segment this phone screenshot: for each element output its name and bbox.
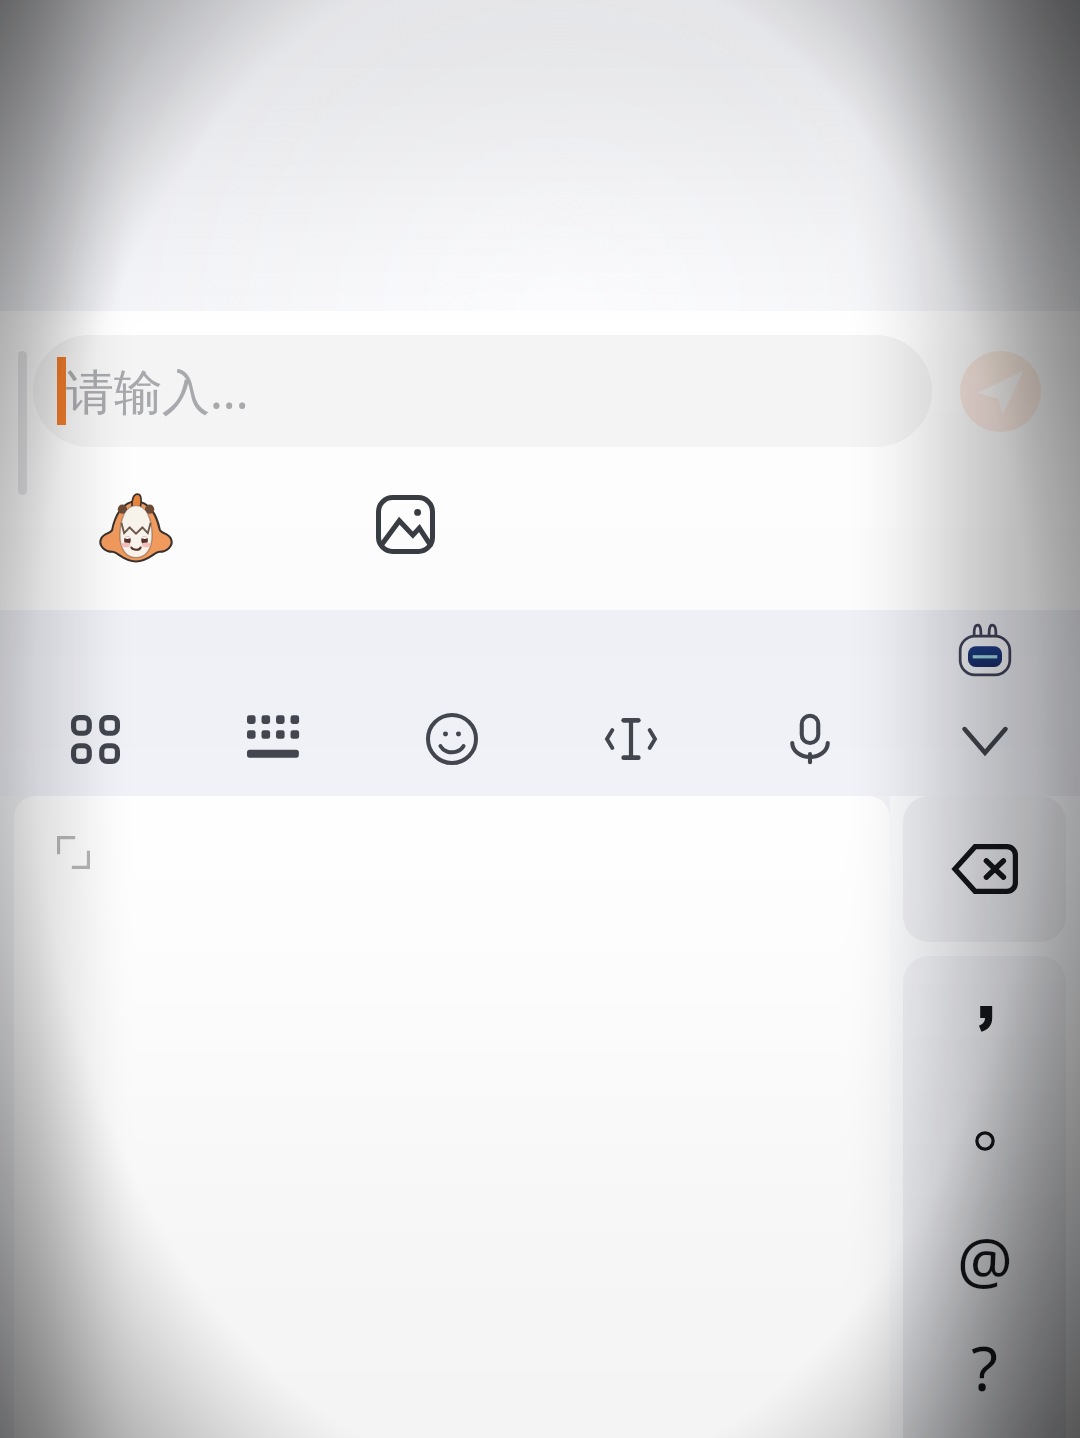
button[interactable]: Emoji — [390, 676, 514, 802]
button[interactable]: Comma — [903, 958, 1066, 1078]
button[interactable]: Handwriting area — [14, 796, 890, 1438]
button[interactable]: Stickers — [96, 490, 176, 570]
button[interactable]: Voice input — [748, 676, 872, 802]
button[interactable]: Edit text — [569, 676, 693, 802]
button[interactable]: Apps — [33, 676, 157, 802]
button[interactable]: Send — [960, 351, 1041, 432]
button[interactable]: Keyboard layout — [211, 676, 335, 802]
button[interactable]: Pictures — [376, 495, 435, 554]
staticText: ? — [971, 1325, 998, 1409]
button[interactable]: Full stop — [903, 1081, 1066, 1201]
button[interactable]: 请输入... — [33, 335, 932, 447]
button[interactable]: AI assistant — [951, 616, 1019, 684]
button[interactable]: Question mark — [903, 1307, 1066, 1427]
button[interactable]: At sign — [903, 1199, 1066, 1319]
staticText: @ — [957, 1217, 1013, 1301]
button[interactable]: Hide keyboard — [923, 676, 1047, 802]
staticText: 请输入... — [66, 358, 249, 424]
button[interactable]: Backspace — [903, 796, 1066, 942]
